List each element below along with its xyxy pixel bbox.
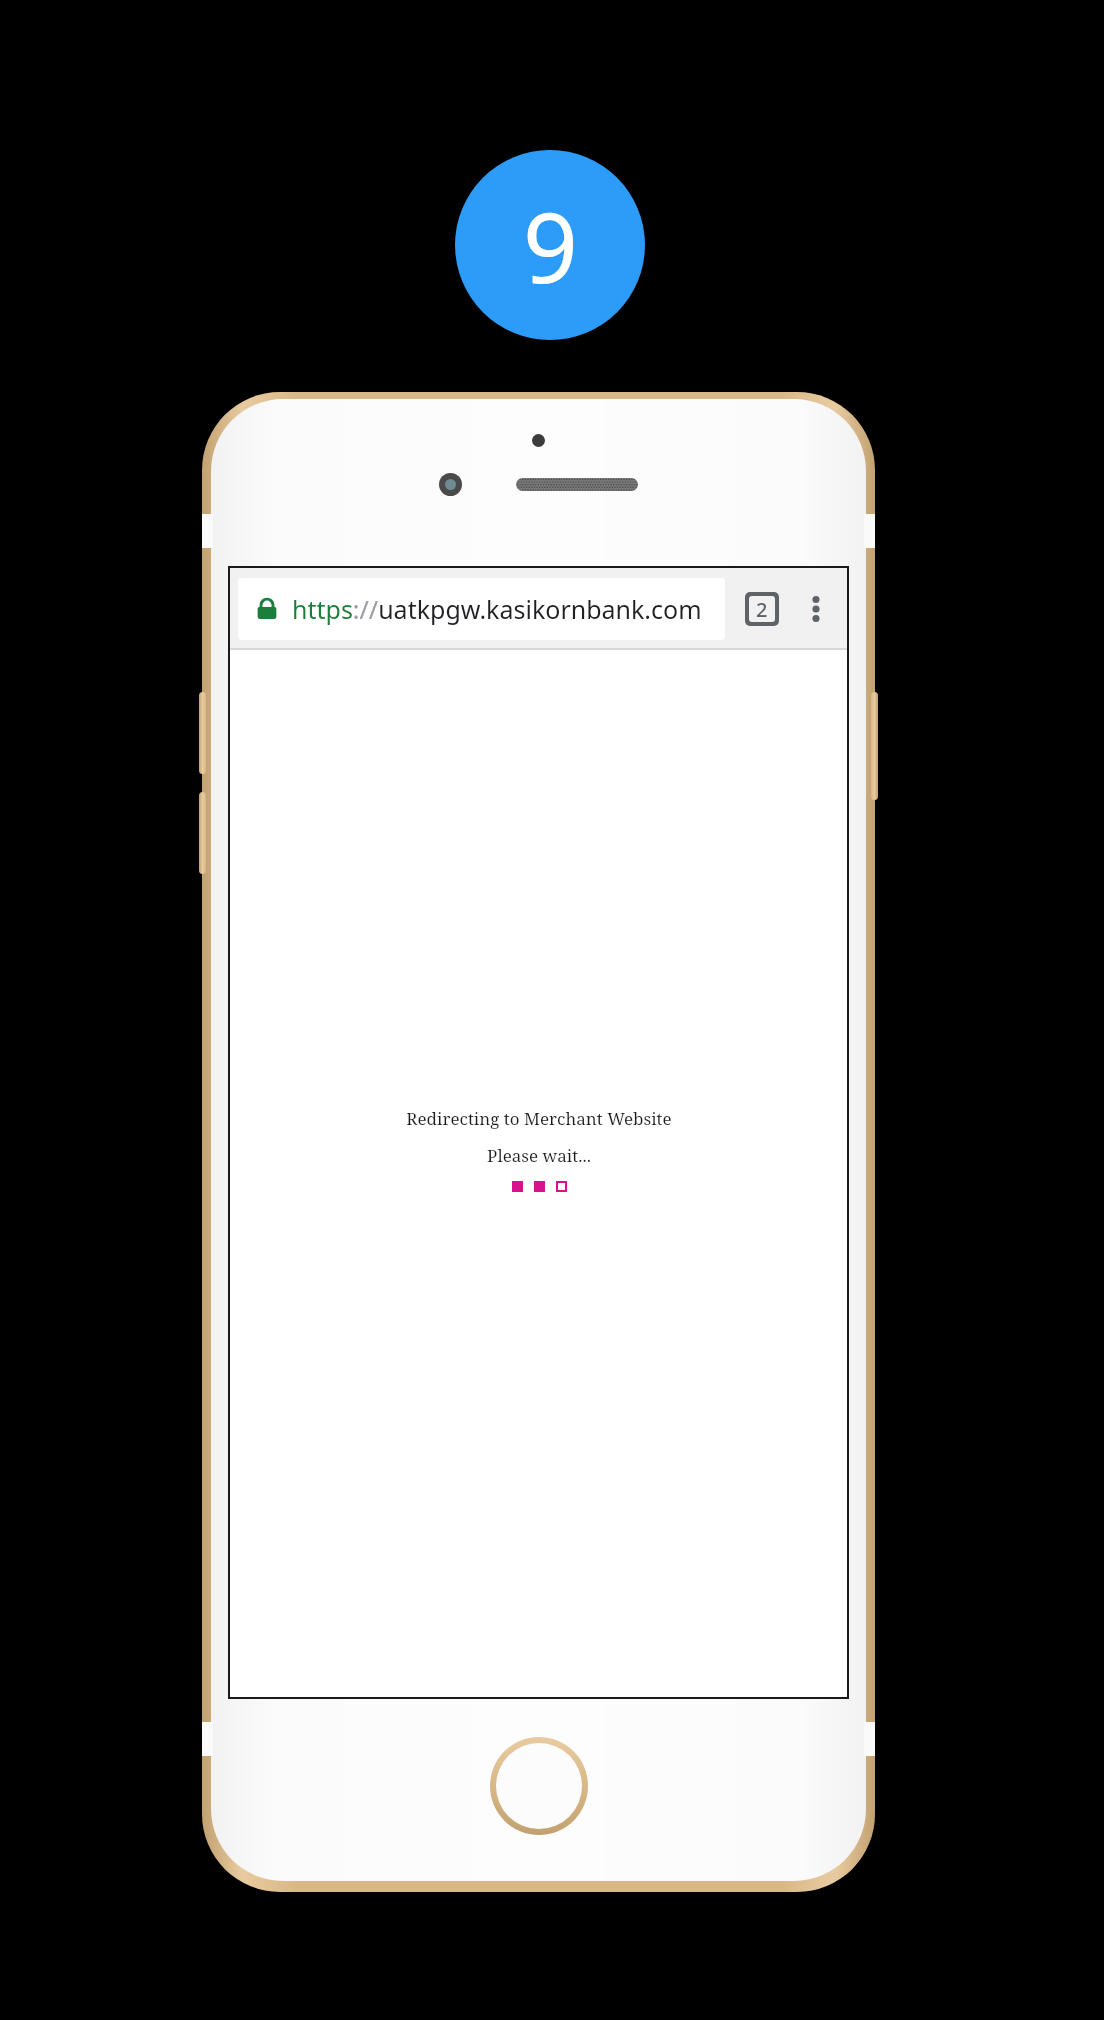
staticText: Redirecting to Merchant Website	[406, 1107, 672, 1130]
staticText: 2	[756, 596, 768, 622]
staticText: 9	[523, 180, 578, 311]
button[interactable]: Home button	[490, 1737, 588, 1835]
button[interactable]: Volume down	[199, 792, 206, 874]
button[interactable]: Volume up	[199, 692, 206, 774]
button[interactable]: More options	[793, 586, 839, 632]
staticText: https://uatkpgw.kasikornbank.com	[292, 592, 702, 626]
staticText: Please wait...	[487, 1144, 591, 1167]
button[interactable]: https://uatkpgw.kasikornbank.com	[238, 578, 725, 640]
button[interactable]: Power	[871, 692, 878, 800]
button[interactable]: Tabs, 2 open	[739, 586, 785, 632]
button[interactable]: Step 9	[455, 150, 645, 340]
